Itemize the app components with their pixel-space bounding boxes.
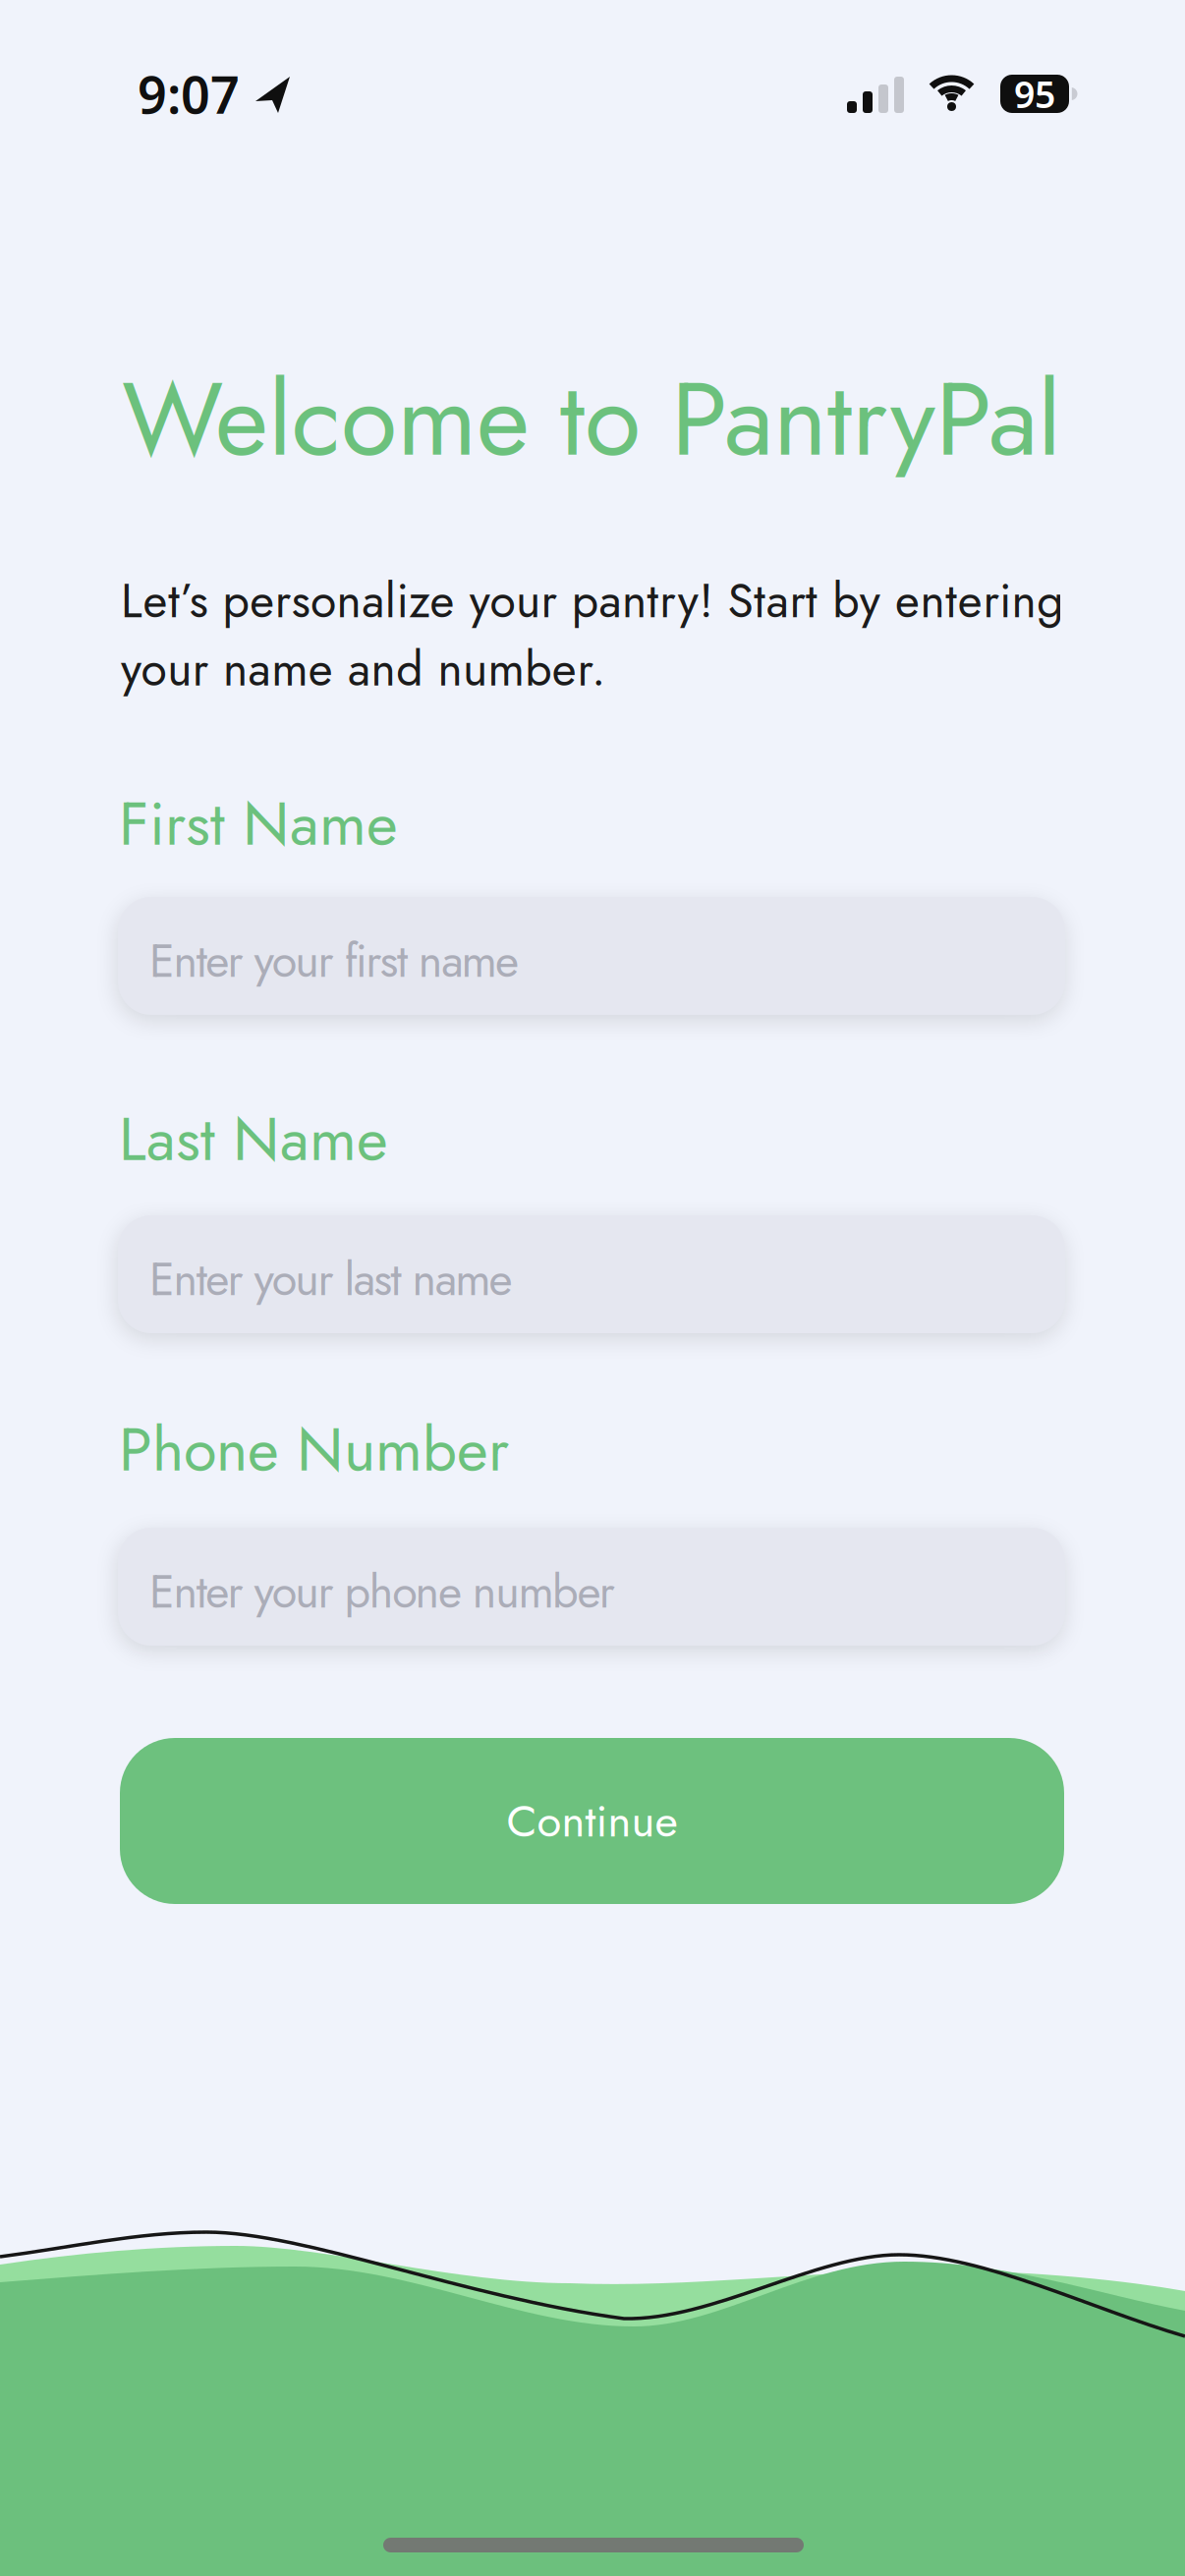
- staticText: Last Name: [119, 1095, 388, 1182]
- button[interactable]: Continue: [120, 1738, 1064, 1904]
- staticText: 9:07: [138, 60, 240, 128]
- staticText: Enter your last name: [149, 1246, 513, 1312]
- button[interactable]: Enter your phone number: [118, 1528, 1065, 1646]
- button[interactable]: Enter your first name: [118, 897, 1065, 1015]
- staticText: Let’s personalize your pantry! Start by …: [121, 567, 1063, 703]
- staticText: Enter your phone number: [149, 1558, 615, 1625]
- staticText: Welcome to PantryPal: [122, 345, 1061, 493]
- staticText: First Name: [119, 780, 398, 867]
- button[interactable]: Enter your last name: [118, 1215, 1065, 1333]
- staticText: Enter your first name: [149, 928, 519, 994]
- staticText: Phone Number: [119, 1406, 509, 1493]
- staticText: 95: [1014, 69, 1055, 118]
- staticText: Continue: [507, 1789, 677, 1853]
